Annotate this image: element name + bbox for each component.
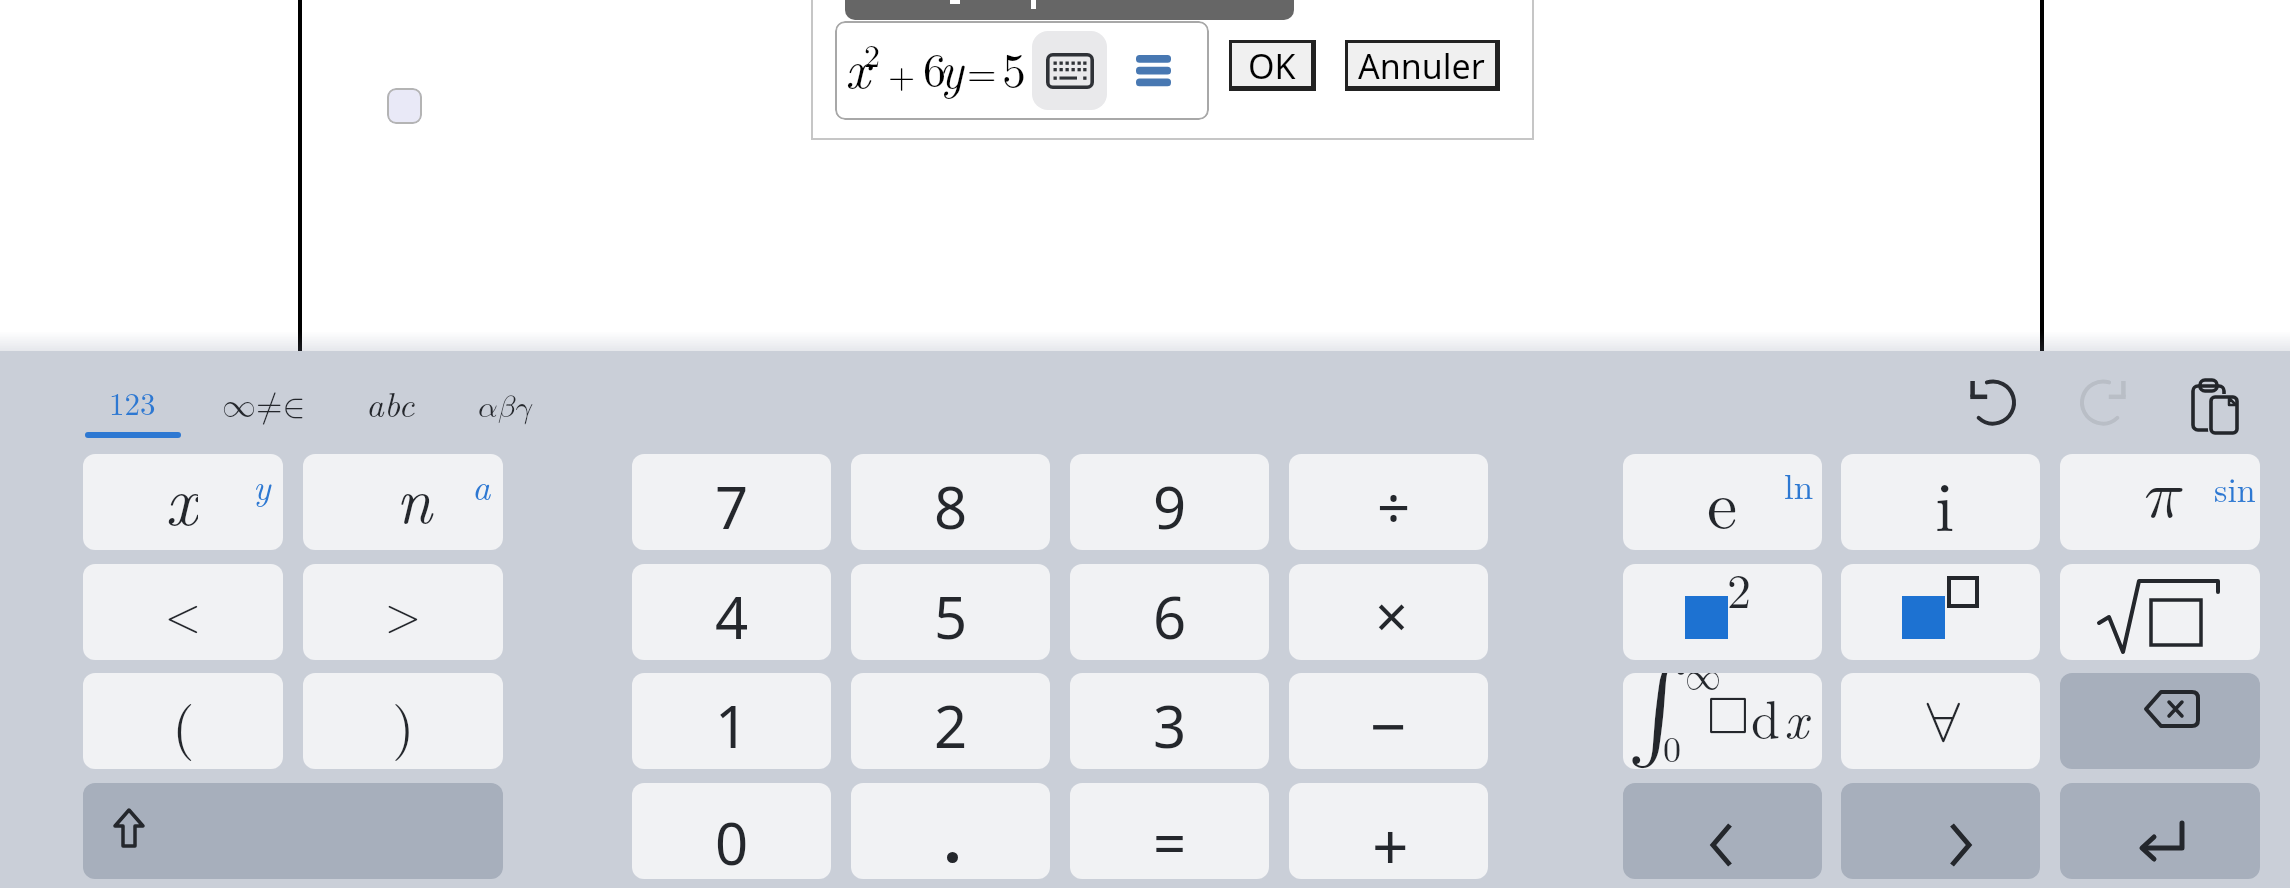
button[interactable]: 1 bbox=[632, 673, 831, 769]
button[interactable] bbox=[2060, 564, 2260, 660]
button[interactable] bbox=[1032, 31, 1107, 110]
button[interactable]: 0 bbox=[632, 783, 831, 879]
staticText: x bbox=[845, 27, 871, 103]
button[interactable] bbox=[1841, 783, 2040, 879]
staticText: 8 bbox=[934, 467, 968, 546]
staticText: a bbox=[472, 459, 491, 510]
staticText: i bbox=[1935, 454, 1955, 548]
staticText: ÷ bbox=[1377, 467, 1411, 546]
staticText: d bbox=[1751, 679, 1780, 753]
button[interactable] bbox=[1966, 377, 2020, 431]
staticText: < bbox=[165, 594, 201, 640]
button[interactable] bbox=[2186, 377, 2240, 431]
button[interactable]: 9 bbox=[1070, 454, 1269, 550]
staticText: e bbox=[1707, 454, 1738, 547]
staticText: 𝜋 bbox=[2144, 462, 2183, 530]
button[interactable]: 3 bbox=[1070, 673, 1269, 769]
staticText: = bbox=[967, 43, 997, 97]
staticText: 2 bbox=[1727, 564, 1752, 622]
staticText: ln bbox=[1784, 460, 1814, 510]
staticText: ∞≠∈ bbox=[222, 390, 306, 424]
staticText: + bbox=[1372, 802, 1409, 879]
staticText: + bbox=[888, 49, 916, 99]
staticText: 3 bbox=[1153, 686, 1187, 765]
button[interactable] bbox=[2060, 783, 2260, 879]
button[interactable]: × bbox=[1289, 564, 1488, 660]
button[interactable]: 7 bbox=[632, 454, 831, 550]
button[interactable]: + bbox=[1289, 783, 1488, 879]
staticText: 6 bbox=[923, 34, 946, 99]
staticText: ) bbox=[392, 682, 415, 764]
button[interactable] bbox=[342, 372, 442, 428]
button[interactable] bbox=[75, 372, 191, 428]
staticText: OK bbox=[1248, 43, 1296, 86]
button[interactable]: OK bbox=[1229, 40, 1316, 91]
button[interactable]: e bbox=[1623, 454, 1822, 550]
button[interactable] bbox=[1623, 783, 1822, 879]
button[interactable]: ∫ bbox=[1623, 673, 1822, 769]
button[interactable]: 4 bbox=[632, 564, 831, 660]
button[interactable]: 8 bbox=[851, 454, 1050, 550]
button[interactable]: i bbox=[1841, 454, 2040, 550]
button[interactable]: 2 bbox=[851, 673, 1050, 769]
staticText: □ bbox=[1707, 685, 1750, 739]
button[interactable] bbox=[204, 372, 324, 428]
staticText: > bbox=[385, 594, 421, 640]
staticText: 5 bbox=[934, 577, 968, 656]
staticText: 123 bbox=[109, 380, 156, 424]
staticText: Annuler bbox=[1358, 43, 1485, 86]
staticText: 0 bbox=[1663, 721, 1681, 769]
staticText: 4 bbox=[715, 577, 749, 656]
button[interactable]: − bbox=[1289, 673, 1488, 769]
staticText: 5 bbox=[1002, 33, 1027, 101]
button[interactable]: 2 bbox=[1623, 564, 1822, 660]
button[interactable] bbox=[2076, 377, 2130, 431]
staticText: × bbox=[1375, 576, 1409, 655]
staticText: = bbox=[1153, 803, 1187, 879]
staticText: x bbox=[1784, 679, 1809, 753]
staticText: ∀ bbox=[1924, 696, 1963, 754]
button[interactable]: > bbox=[303, 564, 503, 660]
staticText: y bbox=[939, 32, 964, 103]
staticText: ∞ bbox=[1685, 673, 1722, 696]
staticText: 6 bbox=[1153, 577, 1187, 656]
staticText: − bbox=[1370, 682, 1407, 769]
button[interactable] bbox=[451, 372, 551, 428]
button[interactable] bbox=[2060, 673, 2260, 769]
button[interactable]: ∀ bbox=[1841, 673, 2040, 769]
button[interactable]: = bbox=[1070, 783, 1269, 879]
staticText: ( bbox=[172, 682, 195, 764]
staticText: 0 bbox=[715, 803, 749, 879]
staticText: abc bbox=[366, 378, 415, 428]
staticText: 7 bbox=[715, 467, 749, 546]
button[interactable]: ) bbox=[303, 673, 503, 769]
staticText: x bbox=[165, 454, 198, 542]
button[interactable] bbox=[1841, 564, 2040, 660]
button[interactable]: ÷ bbox=[1289, 454, 1488, 550]
button[interactable]: < bbox=[83, 564, 283, 660]
button[interactable]: 6 bbox=[1070, 564, 1269, 660]
button[interactable]: n bbox=[303, 454, 503, 550]
button[interactable] bbox=[851, 783, 1050, 879]
button[interactable]: Annuler bbox=[1345, 40, 1500, 91]
button[interactable]: 𝜋 bbox=[2060, 454, 2260, 550]
button[interactable] bbox=[83, 783, 503, 879]
staticText: n bbox=[396, 454, 432, 542]
button[interactable]: x bbox=[83, 454, 283, 550]
staticText: sin bbox=[2214, 464, 2256, 512]
staticText: 9 bbox=[1153, 467, 1187, 546]
button[interactable]: 5 bbox=[851, 564, 1050, 660]
button[interactable] bbox=[835, 21, 1209, 120]
staticText: y bbox=[253, 459, 271, 510]
staticText: 2 bbox=[864, 31, 881, 76]
staticText: ∫ bbox=[1627, 673, 1691, 757]
button[interactable] bbox=[1122, 41, 1185, 100]
staticText: 2 bbox=[934, 686, 968, 765]
button[interactable]: ( bbox=[83, 673, 283, 769]
button[interactable] bbox=[387, 88, 422, 124]
staticText: 𝛼𝛽𝛾 bbox=[478, 392, 532, 423]
staticText: 1 bbox=[715, 686, 749, 765]
